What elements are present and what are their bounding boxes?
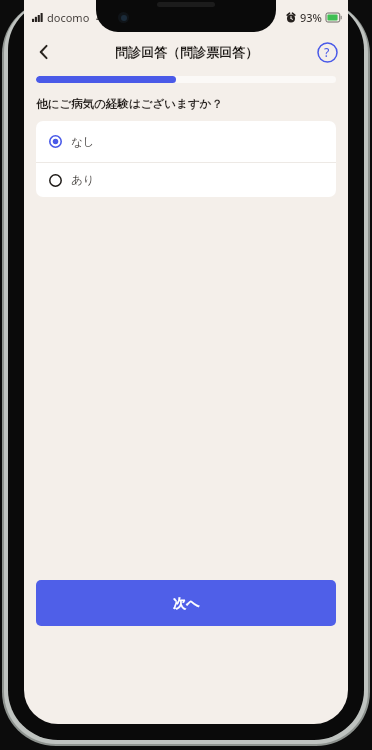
staticText: 93% (300, 10, 322, 25)
button[interactable]: 次へ (36, 580, 336, 626)
staticText: ? (324, 44, 330, 60)
button[interactable]: ヘルプ (312, 37, 342, 67)
button[interactable]: なし (36, 121, 336, 162)
staticText: 問診回答（問診票回答） (115, 44, 258, 60)
staticText: 他にご病気の経験はございますか？ (36, 97, 223, 111)
button[interactable]: あり (36, 163, 336, 197)
staticText: 次へ (173, 595, 200, 611)
staticText: なし (71, 135, 95, 149)
staticText: docomo (47, 10, 90, 25)
staticText: あり (71, 173, 95, 187)
staticText: 4G (96, 10, 111, 25)
button[interactable]: 戻る (28, 36, 60, 68)
